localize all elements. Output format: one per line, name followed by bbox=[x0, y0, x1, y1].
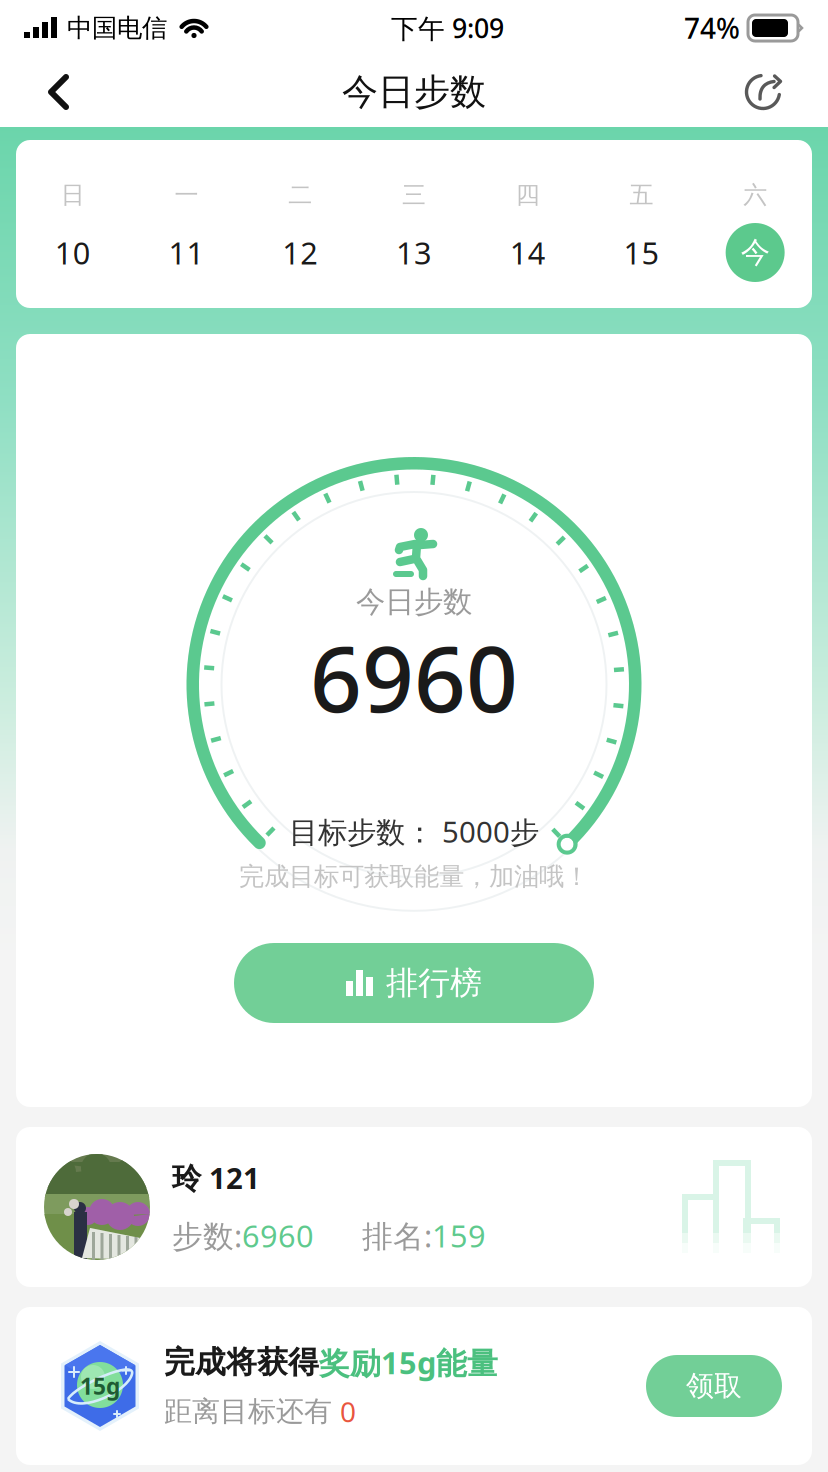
staticText: 完成将获得 bbox=[164, 1344, 319, 1381]
staticText: 完成目标可获取能量，加油哦！ bbox=[239, 861, 589, 892]
button[interactable]: 玲 121 bbox=[0, 1127, 828, 1287]
button[interactable]: 五 bbox=[585, 140, 698, 308]
staticText: 玲 121 bbox=[172, 1158, 260, 1197]
button[interactable]: 六 bbox=[698, 140, 812, 308]
button[interactable]: 日 bbox=[16, 140, 130, 308]
staticText: 15g bbox=[80, 1371, 120, 1401]
staticText: 6960 bbox=[242, 1215, 314, 1256]
staticText: 三 bbox=[402, 180, 426, 210]
staticText: 四 bbox=[516, 180, 540, 210]
button[interactable]: 排行榜 bbox=[234, 943, 594, 1023]
button[interactable]: 四 bbox=[471, 140, 585, 308]
staticText: 今 bbox=[741, 234, 770, 270]
staticText: 排名: bbox=[362, 1215, 432, 1256]
staticText: 二 bbox=[288, 180, 312, 210]
staticText: 0 bbox=[340, 1393, 356, 1430]
staticText: 距离目标还有 bbox=[164, 1394, 340, 1429]
staticText: 6960 bbox=[310, 617, 518, 737]
staticText: 一 bbox=[175, 180, 199, 210]
staticText: 15 bbox=[623, 232, 659, 273]
staticText: 日 bbox=[61, 180, 85, 210]
button[interactable]: 一 bbox=[130, 140, 243, 308]
staticText: 下午 9:09 bbox=[391, 10, 504, 46]
staticText: 今日步数 bbox=[342, 70, 486, 114]
staticText: 领取 bbox=[686, 1369, 742, 1403]
staticText: 14 bbox=[510, 232, 546, 273]
staticText: 13 bbox=[396, 232, 432, 273]
staticText: 五 bbox=[629, 180, 653, 210]
button[interactable]: 二 bbox=[243, 140, 357, 308]
staticText: 步数: bbox=[172, 1215, 242, 1256]
staticText: 11 bbox=[169, 232, 205, 273]
staticText: 10 bbox=[55, 232, 91, 273]
staticText: 奖励15g能量 bbox=[319, 1342, 498, 1383]
button[interactable]: 领取 bbox=[646, 1355, 782, 1417]
staticText: 12 bbox=[282, 232, 318, 273]
button[interactable]: Share bbox=[738, 68, 788, 116]
staticText: 74% bbox=[684, 9, 740, 47]
staticText: 目标步数： 5000步 bbox=[289, 812, 539, 851]
staticText: 中国电信 bbox=[67, 12, 167, 43]
button[interactable]: Back bbox=[40, 69, 90, 115]
staticText: 今日步数 bbox=[356, 584, 472, 620]
staticText: 六 bbox=[743, 180, 767, 210]
staticText: 排行榜 bbox=[386, 963, 482, 1003]
button[interactable]: 三 bbox=[357, 140, 471, 308]
staticText: 159 bbox=[432, 1215, 486, 1256]
